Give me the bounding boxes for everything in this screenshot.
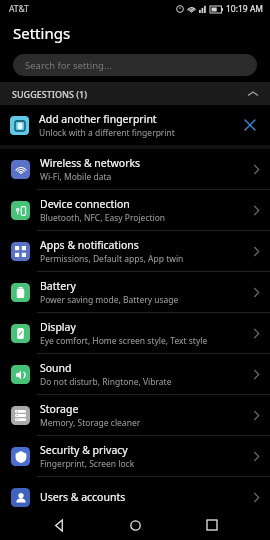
staticText: Unlock with a different fingerprint [39, 127, 175, 139]
staticText: Storage [40, 402, 79, 416]
staticText: Device connection [40, 197, 130, 211]
button[interactable]: Search for setting... [13, 54, 257, 76]
staticText: Wi-Fi, Mobile data [40, 171, 112, 183]
staticText: Wireless & networks [40, 156, 141, 170]
button[interactable]: Storage [0, 395, 270, 435]
staticText: Do not disturb, Ringtone, Vibrate [40, 376, 172, 388]
button[interactable]: Device connection [0, 190, 270, 230]
staticText: AT&T [9, 3, 29, 15]
staticText: Memory, Storage cleaner [40, 417, 141, 429]
staticText: Battery [40, 279, 76, 293]
staticText: Display [40, 320, 76, 334]
staticText: Security & privacy [40, 443, 128, 457]
button[interactable]: SUGGESTIONS (1) [0, 82, 270, 105]
button[interactable]: Home [117, 510, 153, 540]
staticText: Eye comfort, Home screen style, Text sty… [40, 335, 208, 347]
staticText: Bluetooth, NFC, Easy Projection [40, 212, 166, 224]
staticText: Settings [13, 23, 71, 43]
button[interactable]: Battery [0, 272, 270, 312]
staticText: Search for setting... [25, 59, 112, 72]
staticText: Fingerprint, Screen lock [40, 458, 135, 470]
button[interactable]: Security & privacy [0, 436, 270, 476]
button[interactable]: Back [41, 510, 77, 540]
button[interactable]: Display [0, 313, 270, 353]
button[interactable]: Users & accounts [0, 477, 270, 517]
button[interactable]: Add another fingerprint [0, 105, 270, 145]
button[interactable]: Wireless & networks [0, 149, 270, 189]
staticText: Power saving mode, Battery usage [40, 294, 179, 306]
button[interactable]: Recents [194, 510, 230, 540]
staticText: SUGGESTIONS (1) [12, 88, 87, 100]
staticText: Apps & notifications [40, 238, 139, 252]
staticText: Sound [40, 361, 72, 375]
staticText: 10:19 AM [226, 3, 264, 15]
staticText: Permissions, Default apps, App twin [40, 253, 184, 265]
staticText: Add another fingerprint [39, 112, 157, 126]
button[interactable]: Sound [0, 354, 270, 394]
staticText: Users & accounts [40, 490, 126, 504]
button[interactable]: Dismiss suggestion [238, 113, 262, 137]
button[interactable]: Apps & notifications [0, 231, 270, 271]
